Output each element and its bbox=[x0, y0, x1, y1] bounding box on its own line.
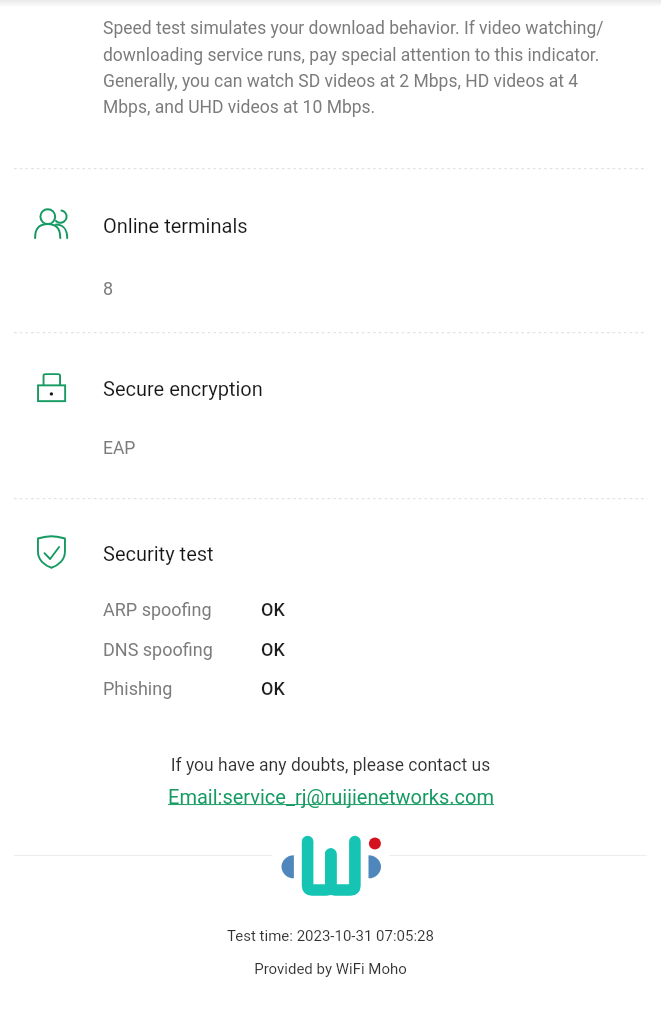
staticText: EAP bbox=[103, 438, 136, 459]
staticText: OK bbox=[261, 599, 285, 620]
staticText: DNS spoofing bbox=[103, 639, 213, 660]
staticText: OK bbox=[261, 639, 285, 660]
staticText: Online terminals bbox=[103, 214, 248, 237]
staticText: ARP spoofing bbox=[103, 599, 212, 620]
staticText: 8 bbox=[103, 278, 114, 299]
staticText: If you have any doubts, please contact u… bbox=[0, 755, 661, 776]
staticText: Phishing bbox=[103, 678, 173, 699]
staticText: Speed test simulates your download behav… bbox=[103, 18, 608, 117]
staticText: Secure encryption bbox=[103, 377, 263, 400]
other: Security test bbox=[37, 536, 67, 570]
other: Online terminals bbox=[34, 208, 69, 239]
staticText: Provided by WiFi Moho bbox=[0, 960, 661, 978]
other: Secure encryption bbox=[37, 373, 67, 403]
staticText: OK bbox=[261, 678, 285, 699]
staticText: Email:service_rj@ruijienetworks.com bbox=[168, 785, 494, 808]
button[interactable]: Email:service_rj@ruijienetworks.com bbox=[0, 785, 661, 808]
staticText: Security test bbox=[103, 542, 214, 565]
staticText: Test time: 2023-10-31 07:05:28 bbox=[0, 927, 661, 945]
